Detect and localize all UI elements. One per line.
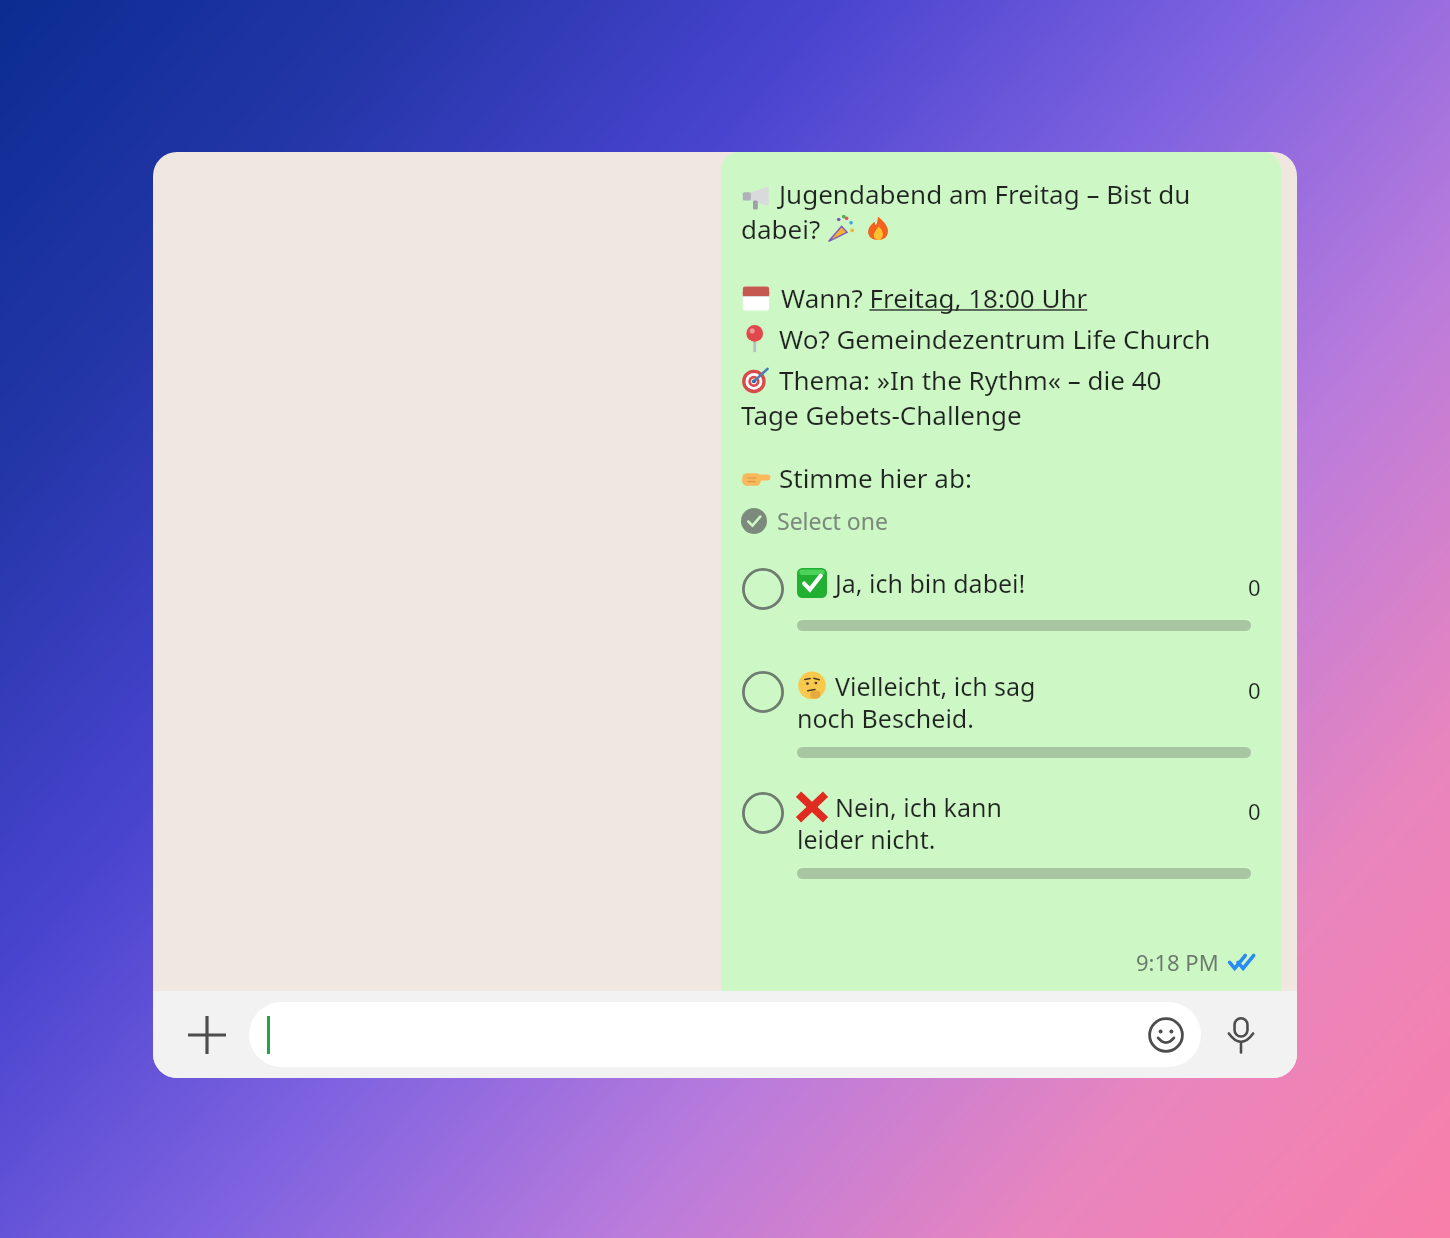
- staticText: noch Bescheid.: [797, 701, 974, 735]
- button[interactable]: Nein, ich kann: [741, 790, 1261, 879]
- staticText: Ja, ich bin dabei!: [835, 566, 1026, 600]
- staticText: 0: [1248, 796, 1261, 826]
- button[interactable]: Voice message: [1215, 1009, 1267, 1061]
- button[interactable]: Vielleicht, ich sag: [741, 669, 1261, 758]
- staticText: Nein, ich kann: [835, 790, 1002, 824]
- staticText: Tage Gebets-Challenge: [741, 397, 1022, 432]
- staticText: leider nicht.: [797, 822, 936, 856]
- staticText: 0: [1248, 572, 1261, 602]
- staticText: dabei?: [741, 211, 827, 246]
- staticText: Wann? Freitag, 18:00 Uhr: [781, 280, 1088, 315]
- button[interactable]: Attach: [183, 1011, 231, 1059]
- staticText: Jugendabend am Freitag – Bist du: [779, 176, 1191, 211]
- button[interactable]: Ja, ich bin dabei!: [741, 566, 1261, 631]
- staticText: 9:18 PM: [1136, 947, 1219, 977]
- staticText: Wo? Gemeindezentrum Life Church: [779, 321, 1211, 356]
- staticText: Select one: [777, 505, 888, 536]
- staticText: 0: [1248, 675, 1261, 705]
- button[interactable]: Emoji: [249, 1002, 1201, 1067]
- staticText: Thema: »In the Rythm« – die 40: [779, 362, 1162, 397]
- staticText: Vielleicht, ich sag: [835, 669, 1036, 703]
- staticText: Stimme hier ab:: [779, 460, 972, 495]
- button[interactable]: Emoji: [1145, 1014, 1187, 1056]
